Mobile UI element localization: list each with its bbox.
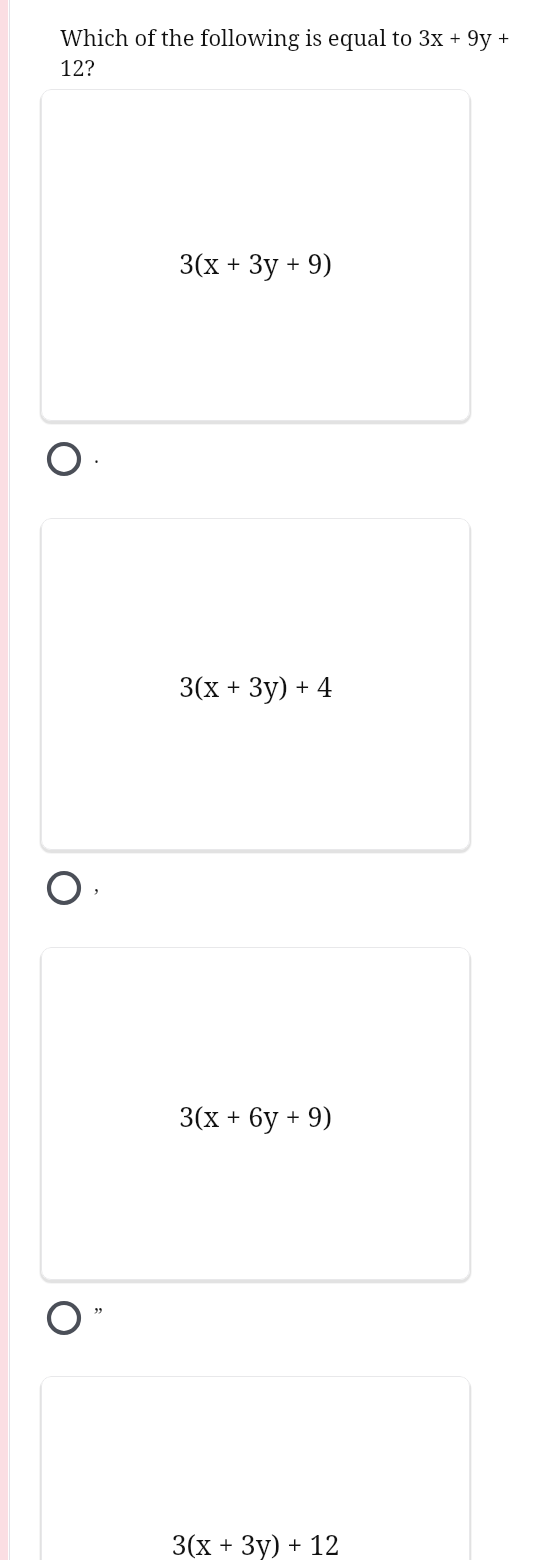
button[interactable]: Select answer option: [42, 435, 162, 483]
button[interactable]: 3(x + 3y + 9): [41, 89, 470, 421]
button[interactable]: Select answer option: [42, 1294, 162, 1342]
button[interactable]: 3(x + 6y + 9): [41, 947, 470, 1280]
staticText: Which of the following is equal to 3x + …: [60, 22, 530, 82]
button[interactable]: 3(x + 3y) + 12: [41, 1376, 470, 1560]
staticText: 3(x + 6y + 9): [41, 1098, 470, 1135]
button[interactable]: 3(x + 3y) + 4: [41, 518, 470, 850]
staticText: .: [94, 442, 99, 469]
button[interactable]: Select answer option: [42, 864, 162, 912]
staticText: ”: [94, 1301, 103, 1328]
staticText: 3(x + 3y) + 4: [41, 668, 470, 705]
staticText: 3(x + 3y) + 12: [41, 1526, 470, 1560]
staticText: ,: [94, 871, 99, 898]
staticText: 3(x + 3y + 9): [41, 245, 470, 282]
